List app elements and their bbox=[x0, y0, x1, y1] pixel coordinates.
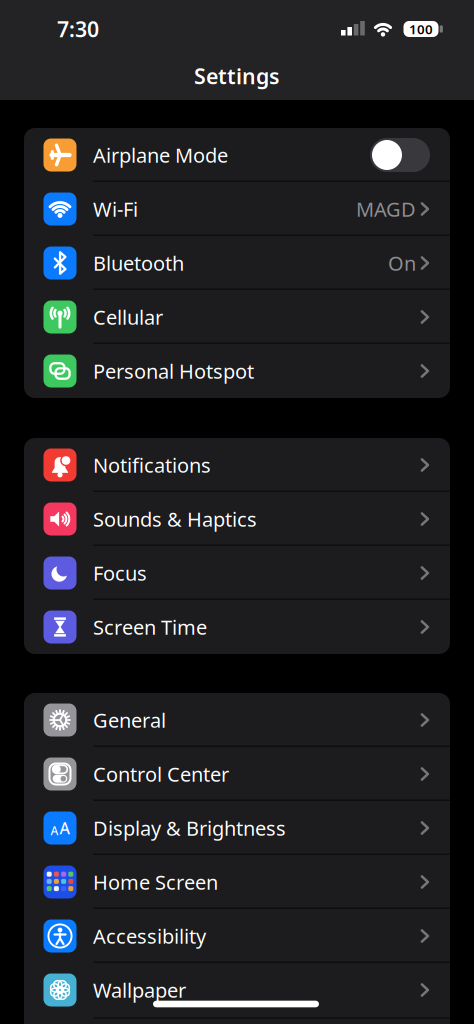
staticText: General bbox=[93, 707, 166, 733]
staticText: Sounds & Haptics bbox=[93, 506, 257, 532]
staticText: Bluetooth bbox=[93, 250, 184, 276]
staticText: Settings bbox=[194, 62, 280, 90]
staticText: Personal Hotspot bbox=[93, 358, 254, 384]
button[interactable]: Airplane Mode bbox=[370, 138, 430, 172]
button[interactable]: Screen Time bbox=[24, 600, 450, 654]
staticText: Focus bbox=[93, 560, 147, 586]
staticText: A bbox=[50, 823, 58, 839]
staticText: Notifications bbox=[93, 452, 211, 478]
button[interactable]: Focus bbox=[24, 546, 450, 600]
staticText: 7:30 bbox=[57, 15, 99, 43]
button[interactable]: Control Center bbox=[24, 747, 450, 801]
button[interactable]: Personal Hotspot bbox=[24, 344, 450, 398]
staticText: Display & Brightness bbox=[93, 815, 286, 841]
button[interactable]: Bluetooth bbox=[24, 236, 450, 290]
staticText: A bbox=[60, 817, 70, 839]
button[interactable]: Accessibility bbox=[24, 909, 450, 963]
staticText: 100 bbox=[409, 20, 433, 38]
staticText: Screen Time bbox=[93, 614, 207, 640]
staticText: Airplane Mode bbox=[93, 142, 228, 168]
staticText: Control Center bbox=[93, 761, 229, 787]
staticText: Cellular bbox=[93, 304, 163, 330]
staticText: Wallpaper bbox=[93, 977, 186, 1003]
staticText: Accessibility bbox=[93, 923, 206, 949]
button[interactable]: Home Screen bbox=[24, 855, 450, 909]
button[interactable]: Cellular bbox=[24, 290, 450, 344]
button[interactable]: Airplane Mode bbox=[24, 128, 450, 182]
button[interactable]: Wi-Fi bbox=[24, 182, 450, 236]
staticText: Wi-Fi bbox=[93, 196, 138, 222]
button[interactable]: Wallpaper bbox=[24, 963, 450, 1017]
button[interactable]: Notifications bbox=[24, 438, 450, 492]
button[interactable]: General bbox=[24, 693, 450, 747]
button[interactable]: Sounds & Haptics bbox=[24, 492, 450, 546]
staticText: On bbox=[388, 250, 416, 276]
button[interactable]: A bbox=[24, 801, 450, 855]
staticText: MAGD bbox=[356, 196, 416, 222]
staticText: Home Screen bbox=[93, 869, 218, 895]
